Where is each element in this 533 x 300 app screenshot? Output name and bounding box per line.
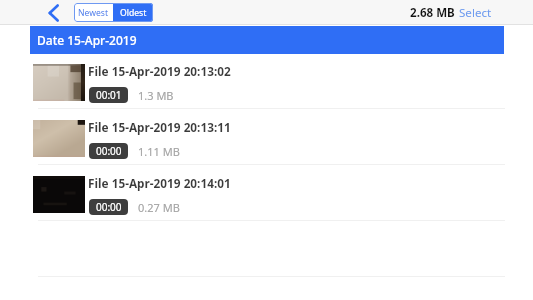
staticText: File 15-Apr-2019 20:14:01 <box>88 175 231 191</box>
button[interactable]: Newest <box>74 3 113 22</box>
button[interactable]: File 15-Apr-2019 20:13:11 <box>0 111 533 164</box>
button[interactable]: Select <box>459 5 492 21</box>
button[interactable]: Oldest <box>113 3 153 22</box>
staticText: 0.27 MB <box>138 200 180 215</box>
staticText: 2.68 MB <box>410 5 455 21</box>
button[interactable]: Date 15-Apr-2019 <box>30 26 504 54</box>
staticText: 1.11 MB <box>138 144 180 159</box>
staticText: 00:01 <box>96 88 122 102</box>
staticText: Newest <box>78 7 109 19</box>
staticText: File 15-Apr-2019 20:13:11 <box>88 119 231 135</box>
staticText: Select <box>459 5 492 21</box>
staticText: 1.3 MB <box>138 88 174 103</box>
button[interactable]: File 15-Apr-2019 20:13:02 <box>0 55 533 108</box>
staticText: File 15-Apr-2019 20:13:02 <box>88 63 231 79</box>
staticText: Date 15-Apr-2019 <box>37 32 137 48</box>
button[interactable]: Back <box>43 0 63 25</box>
staticText: Oldest <box>120 7 147 19</box>
staticText: 00:00 <box>96 144 122 158</box>
button[interactable]: File 15-Apr-2019 20:14:01 <box>0 167 533 220</box>
staticText: 00:00 <box>96 200 122 214</box>
